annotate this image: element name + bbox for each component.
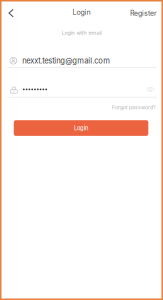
staticText: Login with email — [61, 30, 101, 36]
staticText: Login — [72, 8, 90, 16]
button[interactable]: Show password — [144, 85, 158, 94]
button[interactable]: Forgot password? — [112, 102, 163, 112]
staticText: Forgot password? — [112, 104, 156, 110]
button[interactable]: Back — [0, 3, 20, 23]
staticText: Register — [130, 9, 157, 17]
button[interactable]: Login — [14, 120, 148, 136]
button[interactable]: Register — [130, 3, 163, 23]
staticText: nexxt.testing@gmail.com — [22, 56, 110, 65]
staticText: Login — [74, 125, 88, 131]
